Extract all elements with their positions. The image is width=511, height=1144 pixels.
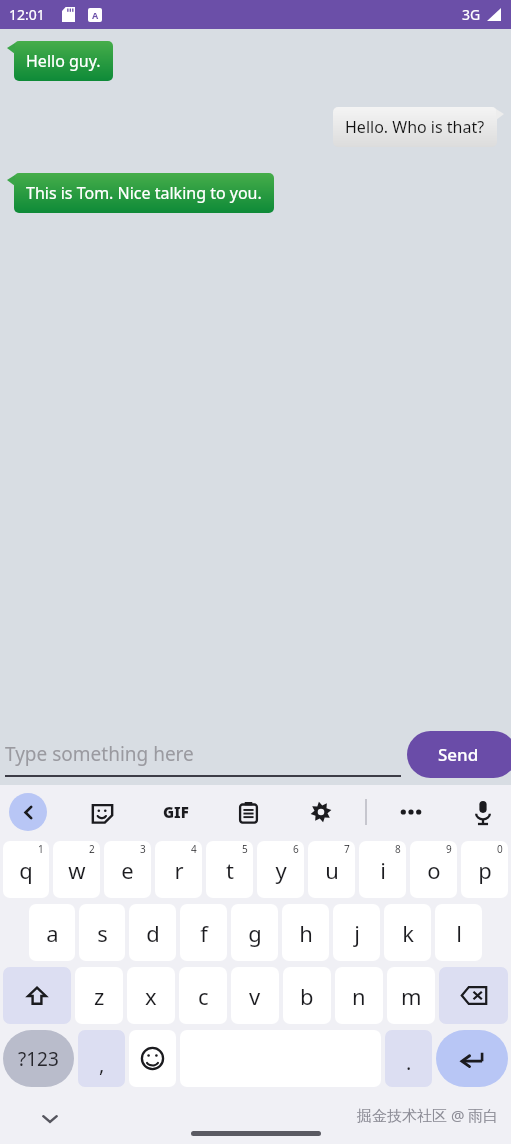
button[interactable]: Backspace <box>439 967 508 1024</box>
staticText: l <box>456 918 462 948</box>
button[interactable]: Shift <box>3 967 71 1024</box>
staticText: Hello. Who is that? <box>345 116 485 138</box>
staticText: n <box>352 981 366 1011</box>
button[interactable]: u <box>308 841 355 898</box>
staticText: 6 <box>293 842 299 856</box>
button[interactable]: Hello guy. <box>14 41 113 81</box>
staticText: p <box>478 855 492 885</box>
staticText: m <box>401 981 422 1011</box>
staticText: j <box>354 918 360 948</box>
staticText: t <box>226 855 234 885</box>
button[interactable]: q <box>3 841 49 898</box>
staticText: q <box>19 855 33 885</box>
button[interactable]: Settings <box>303 794 339 830</box>
staticText: Hello guy. <box>26 50 101 72</box>
button[interactable]: r <box>155 841 202 898</box>
staticText: , <box>99 1051 105 1078</box>
button[interactable]: Back <box>9 793 47 831</box>
staticText: z <box>94 981 105 1011</box>
staticText: h <box>299 918 313 948</box>
staticText: k <box>402 918 414 948</box>
button[interactable]: This is Tom. Nice talking to you. <box>14 173 274 213</box>
button[interactable]: g <box>231 904 278 961</box>
staticText: f <box>200 918 208 948</box>
button[interactable]: h <box>282 904 329 961</box>
staticText: A <box>92 9 99 21</box>
staticText: 2 <box>89 842 95 856</box>
staticText: x <box>145 981 157 1011</box>
button[interactable]: c <box>179 967 227 1024</box>
button[interactable]: l <box>435 904 482 961</box>
button[interactable]: z <box>75 967 123 1024</box>
button[interactable]: x <box>127 967 175 1024</box>
button[interactable]: Emoji <box>129 1030 176 1087</box>
button[interactable]: . <box>385 1030 432 1087</box>
button[interactable]: o <box>410 841 457 898</box>
staticText: 4 <box>191 842 197 856</box>
staticText: o <box>427 855 441 885</box>
staticText: 1 <box>38 842 44 856</box>
staticText: 8 <box>395 842 401 856</box>
staticText: Send <box>438 743 479 766</box>
button[interactable]: d <box>129 904 176 961</box>
staticText: 12:01 <box>9 5 45 24</box>
staticText: r <box>174 855 184 885</box>
button[interactable]: b <box>283 967 331 1024</box>
staticText: v <box>249 981 261 1011</box>
staticText: u <box>325 855 339 885</box>
staticText: g <box>248 918 262 948</box>
button[interactable]: k <box>384 904 431 961</box>
staticText: b <box>300 981 314 1011</box>
button[interactable]: v <box>231 967 279 1024</box>
button[interactable]: Enter <box>436 1030 508 1087</box>
button[interactable]: GIF <box>156 792 196 832</box>
staticText: 7 <box>344 842 350 856</box>
staticText: 掘金技术社区 @ 雨白 <box>357 1105 499 1125</box>
staticText: Type something here <box>5 741 194 767</box>
staticText: c <box>198 981 209 1011</box>
button[interactable]: p <box>461 841 508 898</box>
staticText: e <box>121 855 134 885</box>
staticText: 3G <box>462 5 481 24</box>
staticText: 5 <box>242 842 248 856</box>
staticText: ?123 <box>18 1046 59 1072</box>
button[interactable]: t <box>206 841 253 898</box>
staticText: This is Tom. Nice talking to you. <box>26 182 262 204</box>
button[interactable]: y <box>257 841 304 898</box>
staticText: s <box>97 918 108 948</box>
button[interactable]: Send <box>407 731 511 778</box>
staticText: i <box>380 855 386 885</box>
button[interactable]: a <box>29 904 75 961</box>
staticText: 3 <box>140 842 146 856</box>
staticText: y <box>275 855 287 885</box>
button[interactable]: m <box>387 967 435 1024</box>
button[interactable]: i <box>359 841 406 898</box>
button[interactable]: n <box>335 967 383 1024</box>
button[interactable]: , <box>78 1030 125 1087</box>
button[interactable]: s <box>79 904 125 961</box>
button[interactable]: Type something here <box>5 731 401 777</box>
button[interactable]: Hide keyboard <box>33 1102 67 1136</box>
staticText: 9 <box>446 842 452 856</box>
button[interactable]: f <box>180 904 227 961</box>
button[interactable]: Voice input <box>465 794 501 830</box>
staticText: 0 <box>497 842 503 856</box>
button[interactable]: Clipboard <box>230 794 266 830</box>
button[interactable]: ?123 <box>3 1030 74 1087</box>
button[interactable]: w <box>53 841 100 898</box>
button[interactable]: More options <box>392 793 430 831</box>
staticText: . <box>406 1049 412 1076</box>
staticText: w <box>68 855 86 885</box>
staticText: d <box>146 918 160 948</box>
button[interactable]: Stickers <box>84 794 120 830</box>
button[interactable]: Hello. Who is that? <box>333 107 497 147</box>
button[interactable]: j <box>333 904 380 961</box>
staticText: GIF <box>163 802 189 822</box>
staticText: a <box>46 918 59 948</box>
button[interactable]: e <box>104 841 151 898</box>
